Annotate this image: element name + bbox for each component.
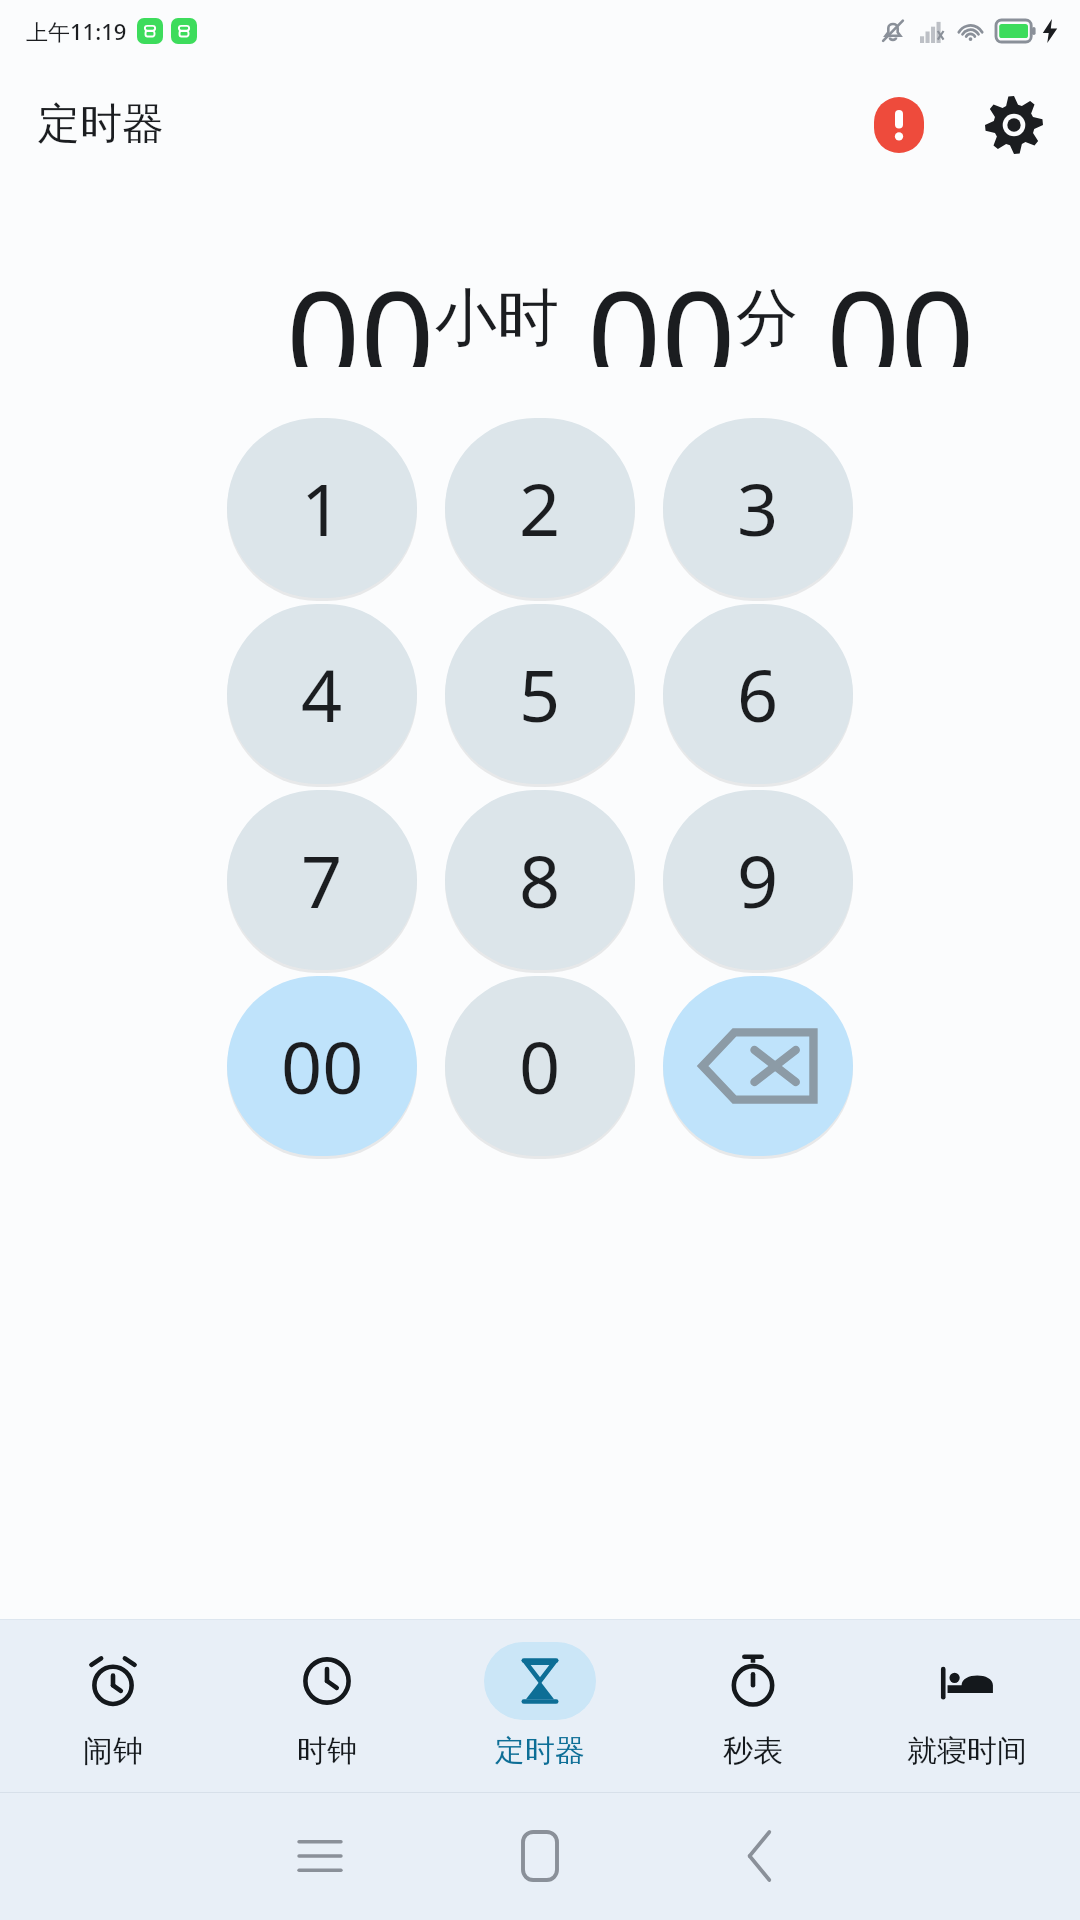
button[interactable]: 时钟 bbox=[227, 1642, 427, 1770]
button[interactable]: 闹钟 bbox=[13, 1642, 213, 1770]
staticText: 4 bbox=[301, 645, 343, 743]
button[interactable]: Warning bbox=[870, 96, 928, 154]
staticText: 上午11:19 bbox=[26, 16, 127, 46]
button[interactable]: 1 bbox=[227, 418, 417, 598]
button[interactable]: Back bbox=[705, 1801, 815, 1911]
button[interactable]: Backspace bbox=[663, 976, 853, 1156]
button[interactable]: Settings bbox=[976, 87, 1052, 163]
staticText: 秒表 bbox=[723, 1732, 783, 1770]
staticText: 00 bbox=[587, 247, 736, 367]
staticText: 闹钟 bbox=[83, 1732, 143, 1770]
staticText: 定时器 bbox=[495, 1732, 585, 1770]
button[interactable]: 2 bbox=[445, 418, 635, 598]
staticText: 小时 bbox=[435, 279, 559, 357]
button[interactable]: 7 bbox=[227, 790, 417, 970]
staticText: 7 bbox=[301, 831, 343, 929]
staticText: 8 bbox=[519, 831, 561, 929]
button[interactable]: 8 bbox=[445, 790, 635, 970]
staticText: 0 bbox=[519, 1017, 561, 1115]
staticText: 00 bbox=[826, 247, 975, 367]
button[interactable]: 0 bbox=[445, 976, 635, 1156]
button[interactable]: 3 bbox=[663, 418, 853, 598]
staticText: 5 bbox=[519, 645, 561, 743]
button[interactable]: 就寝时间 bbox=[867, 1642, 1067, 1770]
staticText: 00 bbox=[281, 1017, 364, 1115]
button[interactable]: 6 bbox=[663, 604, 853, 784]
staticText: 3 bbox=[737, 459, 779, 557]
staticText: 1 bbox=[301, 459, 343, 557]
button[interactable]: 9 bbox=[663, 790, 853, 970]
button[interactable]: 定时器 bbox=[440, 1642, 640, 1770]
staticText: 定时器 bbox=[38, 98, 164, 151]
button[interactable]: 5 bbox=[445, 604, 635, 784]
button[interactable]: 00 bbox=[227, 976, 417, 1156]
staticText: 分 bbox=[736, 279, 798, 357]
button[interactable]: Recents bbox=[265, 1801, 375, 1911]
staticText: 就寝时间 bbox=[907, 1732, 1027, 1770]
staticText: 00 bbox=[286, 247, 435, 367]
staticText: 6 bbox=[737, 645, 779, 743]
staticText: 时钟 bbox=[297, 1732, 357, 1770]
staticText: 9 bbox=[737, 831, 779, 929]
staticText: 2 bbox=[519, 459, 561, 557]
button[interactable]: 4 bbox=[227, 604, 417, 784]
button[interactable]: 秒表 bbox=[653, 1642, 853, 1770]
button[interactable]: Home bbox=[485, 1801, 595, 1911]
